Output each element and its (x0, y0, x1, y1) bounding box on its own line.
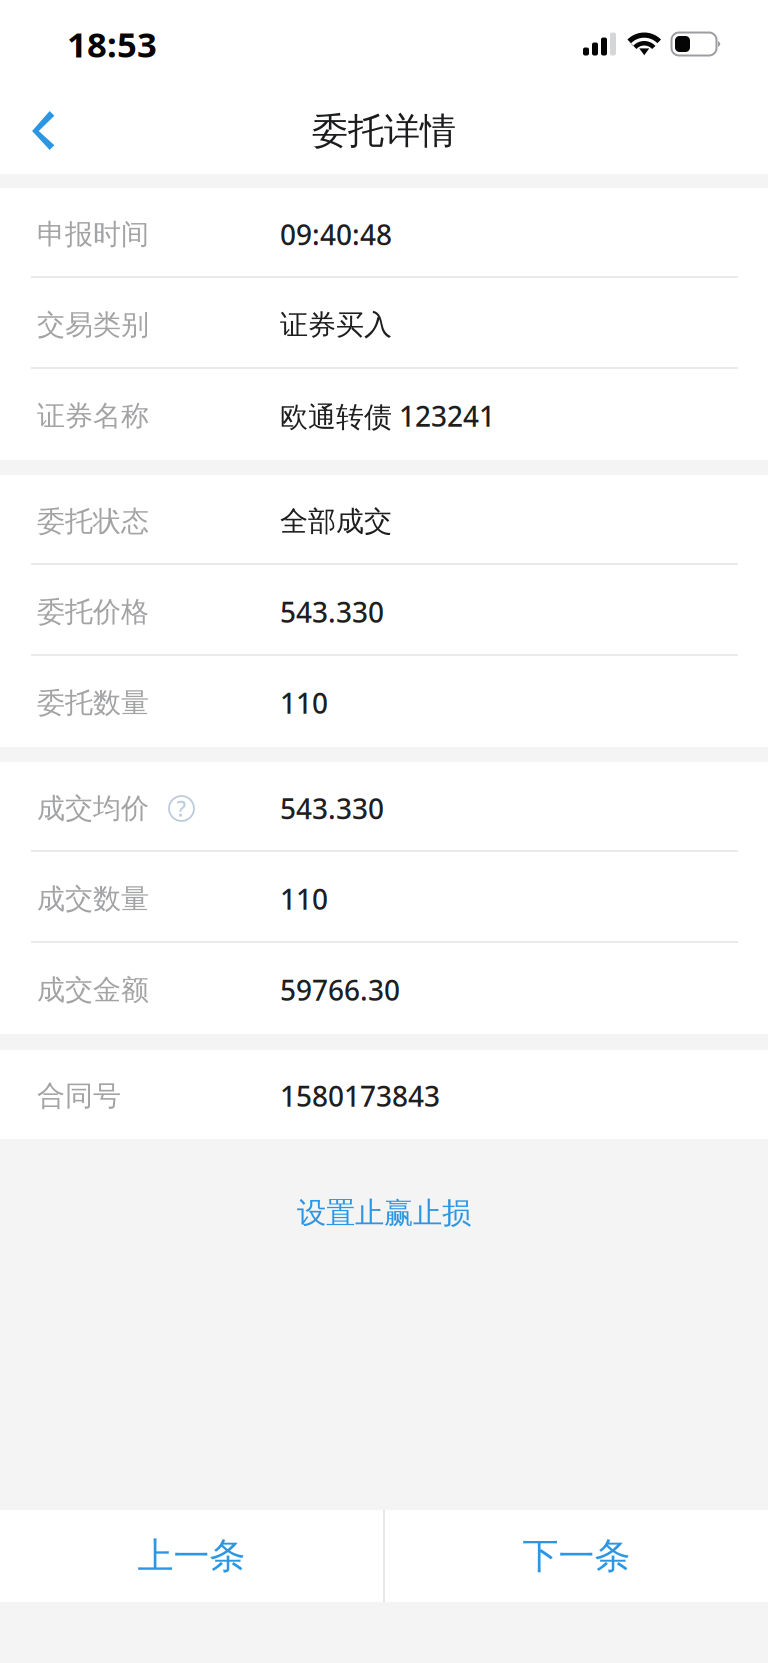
staticText: ? (176, 794, 186, 823)
staticText: 1580173843 (280, 1077, 440, 1115)
staticText: 设置止赢止损 (297, 1195, 471, 1231)
button[interactable]: 成交均价说明 (169, 796, 194, 821)
staticText: 证券买入 (280, 308, 392, 342)
button[interactable]: 下一条 (385, 1510, 768, 1602)
staticText: 合同号 (37, 1079, 121, 1113)
staticText: 上一条 (137, 1534, 245, 1578)
staticText: 成交金额 (37, 973, 149, 1007)
staticText: 交易类别 (37, 308, 149, 342)
staticText: 成交均价 (37, 791, 149, 826)
staticText: 110 (280, 684, 328, 722)
staticText: 543.330 (280, 593, 384, 631)
staticText: 543.330 (280, 790, 384, 827)
staticText: 全部成交 (280, 504, 392, 539)
button[interactable]: 返回 (0, 88, 90, 174)
staticText: 委托价格 (37, 595, 149, 629)
staticText: 110 (280, 880, 328, 918)
staticText: 委托状态 (37, 504, 149, 539)
staticText: 59766.30 (280, 971, 400, 1009)
button[interactable]: 上一条 (0, 1510, 383, 1602)
staticText: 成交数量 (37, 882, 149, 916)
staticText: 下一条 (522, 1534, 630, 1578)
staticText: 申报时间 (37, 217, 149, 252)
staticText: 09:40:48 (280, 216, 392, 253)
staticText: 证券名称 (37, 399, 149, 433)
staticText: 欧通转债 123241 (280, 397, 495, 435)
staticText: 委托详情 (312, 109, 456, 153)
staticText: 18:53 (67, 21, 157, 67)
staticText: 委托数量 (37, 686, 149, 720)
button[interactable]: 设置止赢止损 (0, 1139, 768, 1287)
